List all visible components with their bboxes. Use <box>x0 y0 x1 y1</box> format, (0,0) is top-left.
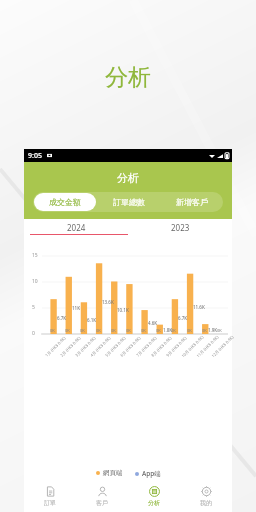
staticText: 0K <box>217 328 222 333</box>
staticText: 2024 <box>67 222 86 233</box>
staticText: 1.8K <box>163 327 173 333</box>
button[interactable]: 訂單總數 <box>98 193 159 211</box>
staticText: 11月 (HK$ 0.9K) <box>195 334 219 358</box>
staticText: 訂單 <box>44 499 56 507</box>
staticText: 1月 (HK$ 0.9K) <box>44 335 67 358</box>
staticText: 2023 <box>171 222 190 233</box>
staticText: 我的 <box>200 499 212 507</box>
staticText: 分析 <box>117 171 139 185</box>
button[interactable]: 成交金額 <box>34 193 96 211</box>
staticText: 6.7K <box>178 315 188 321</box>
staticText: 0K <box>187 328 192 333</box>
staticText: 1.9K <box>208 327 218 333</box>
staticText: 10.1K <box>117 307 129 313</box>
staticText: 12月 (HK$ 0.9K) <box>210 334 234 358</box>
staticText: 0K <box>141 328 146 333</box>
staticText: App端 <box>142 469 161 478</box>
staticText: 6.1K <box>87 317 97 323</box>
button[interactable]: 2024 <box>24 221 128 234</box>
button[interactable]: 客戶 <box>76 480 128 512</box>
staticText: 7月 (HK$ 0.9K) <box>135 335 158 358</box>
staticText: 6月 (HK$ 0.9K) <box>119 335 142 358</box>
staticText: 5 <box>32 304 35 311</box>
staticText: 11.6K <box>193 304 205 310</box>
staticText: 分析 <box>148 499 160 507</box>
staticText: 9:05 <box>28 151 42 161</box>
staticText: 6.7K <box>57 315 67 321</box>
staticText: 0K <box>50 328 55 333</box>
staticText: 0K <box>96 328 101 333</box>
staticText: 10月 (HK$ 0.9K) <box>180 334 204 358</box>
staticText: 0K <box>111 328 116 333</box>
staticText: 2月 (HK$ 0.9K) <box>59 335 82 358</box>
staticText: 0K <box>126 328 131 333</box>
staticText: 新增客戶 <box>176 197 208 207</box>
staticText: 8月 (HK$ 0.9K) <box>150 335 173 358</box>
button[interactable]: 訂單 <box>24 480 76 512</box>
button[interactable]: 我的 <box>180 480 232 512</box>
staticText: 訂單總數 <box>113 197 145 207</box>
staticText: 13.6K <box>102 299 114 305</box>
button[interactable]: 分析 <box>128 480 180 512</box>
staticText: 分析 <box>105 63 151 92</box>
staticText: 4月 (HK$ 0.9K) <box>89 335 112 358</box>
staticText: 0 <box>32 330 35 337</box>
staticText: 成交金額 <box>49 197 81 207</box>
button[interactable]: 新增客戶 <box>161 193 222 211</box>
staticText: 0K <box>80 328 85 333</box>
staticText: 網頁端 <box>103 469 123 477</box>
staticText: 0K <box>156 328 161 333</box>
staticText: 客戶 <box>96 499 108 507</box>
staticText: 15 <box>32 252 38 259</box>
staticText: 5月 (HK$ 0.9K) <box>104 335 127 358</box>
button[interactable]: 2023 <box>128 221 232 234</box>
staticText: 3月 (HK$ 0.9K) <box>74 335 97 358</box>
staticText: 0K <box>202 328 207 333</box>
staticText: 9月 (HK$ 0.9K) <box>165 335 188 358</box>
staticText: 0K <box>171 328 176 333</box>
staticText: 11K <box>72 305 80 311</box>
staticText: 4.6K <box>148 320 158 326</box>
staticText: 10 <box>32 278 38 285</box>
staticText: 0K <box>65 328 70 333</box>
